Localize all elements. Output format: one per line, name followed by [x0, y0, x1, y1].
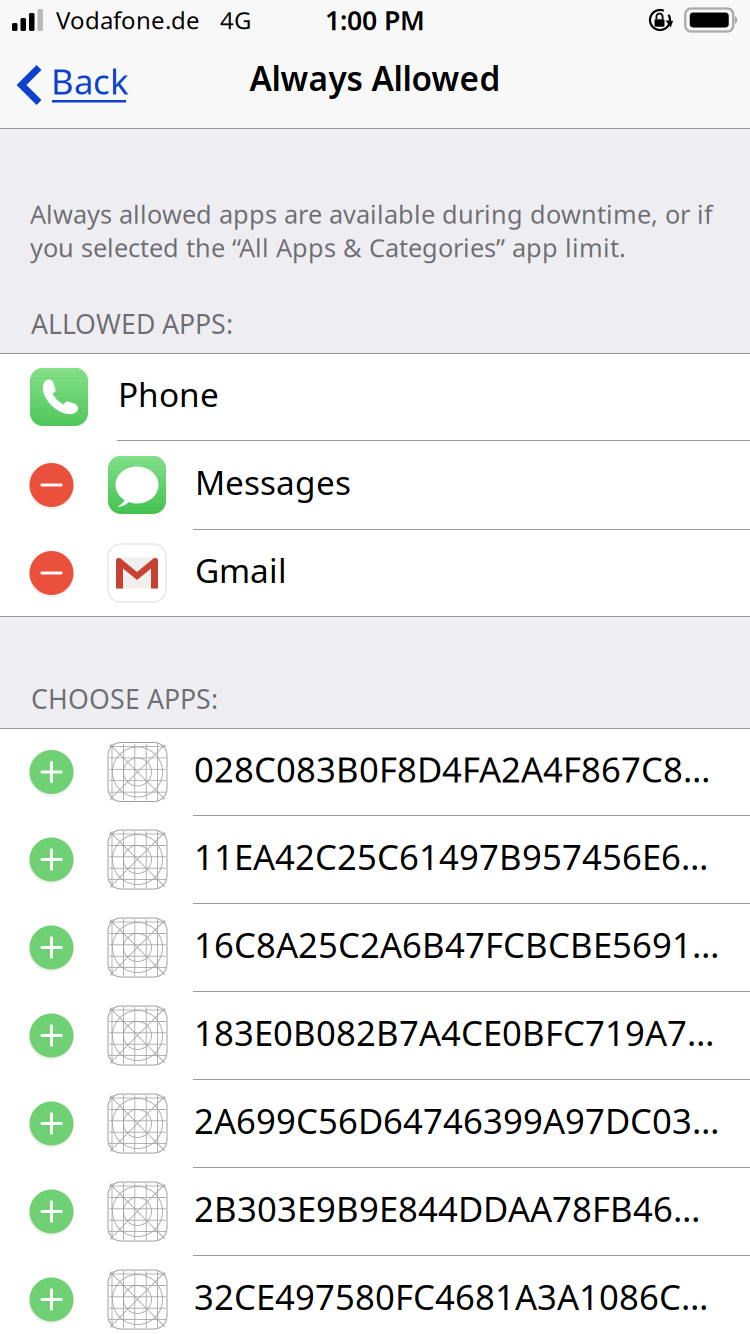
staticText: 4G	[220, 4, 251, 36]
button[interactable]: 028C083B0F8D4FA2A4F867C8D24B	[0, 729, 750, 815]
staticText: 16C8A25C2A6B47FCBCBE5691D4A2	[194, 921, 719, 967]
staticText: Back	[51, 58, 129, 104]
staticText: 2A699C56D64746399A97DC03FE81	[194, 1097, 719, 1143]
button[interactable]: Phone	[0, 354, 750, 440]
button[interactable]: 32CE497580FC4681A3A1086C8D4F	[0, 1256, 750, 1334]
button[interactable]: Add to Allowed Apps	[29, 1099, 74, 1147]
staticText: 183E0B082B7A4CE0BFC719A7B2D1	[194, 1009, 719, 1055]
staticText: Phone	[118, 372, 219, 416]
staticText: Messages	[195, 460, 351, 504]
staticText: 028C083B0F8D4FA2A4F867C8D24B	[194, 746, 719, 792]
staticText: Always Allowed	[249, 56, 500, 100]
button[interactable]: Remove from Allowed Apps	[29, 549, 74, 597]
button[interactable]: 2A699C56D64746399A97DC03FE81	[0, 1080, 750, 1167]
button[interactable]: Gmail	[0, 530, 750, 616]
button[interactable]: Add to Allowed Apps	[29, 1187, 74, 1235]
staticText: CHOOSE APPS:	[31, 681, 218, 716]
button[interactable]: Add to Allowed Apps	[29, 1011, 74, 1059]
button[interactable]: Back	[0, 48, 141, 118]
staticText: Always allowed apps are available during…	[30, 197, 713, 264]
staticText: 32CE497580FC4681A3A1086C8D4F	[194, 1273, 719, 1319]
button[interactable]: 16C8A25C2A6B47FCBCBE5691D4A2	[0, 904, 750, 991]
button[interactable]: Add to Allowed Apps	[29, 748, 74, 796]
button[interactable]: Remove from Allowed Apps	[29, 461, 74, 509]
button[interactable]: Messages	[0, 441, 750, 529]
button[interactable]: Add to Allowed Apps	[29, 835, 74, 883]
staticText: 2B303E9B9E844DDAA78FB46C19A3	[194, 1185, 719, 1231]
button[interactable]: Add to Allowed Apps	[29, 923, 74, 971]
button[interactable]: 11EA42C25C61497B957456E62A5C	[0, 816, 750, 903]
staticText: 11EA42C25C61497B957456E62A5C	[194, 833, 719, 879]
staticText: 1:00 PM	[325, 2, 425, 38]
button[interactable]: Add to Allowed Apps	[29, 1275, 74, 1323]
staticText: ALLOWED APPS:	[31, 306, 233, 341]
button[interactable]: 183E0B082B7A4CE0BFC719A7B2D1	[0, 992, 750, 1079]
button[interactable]: 2B303E9B9E844DDAA78FB46C19A3	[0, 1168, 750, 1255]
staticText: Vodafone.de	[56, 4, 200, 36]
staticText: Gmail	[195, 548, 287, 592]
